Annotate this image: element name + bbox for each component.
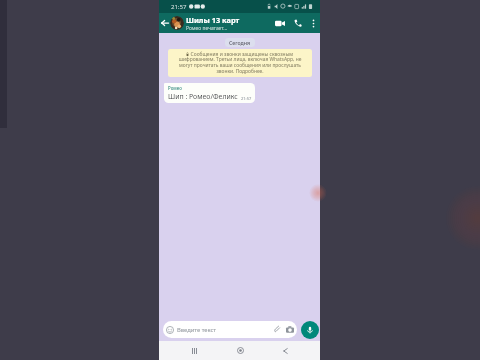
staticText: 21:57 (171, 3, 187, 11)
staticText: Ромео (168, 85, 182, 91)
button[interactable]: More options (307, 13, 319, 33)
button[interactable]: Back (159, 13, 170, 33)
staticText: Введите текст (177, 326, 216, 334)
button[interactable]: Ромео (164, 83, 255, 103)
button[interactable]: Camera (285, 325, 294, 334)
button[interactable]: Сегодня (225, 38, 255, 47)
button[interactable]: Home (229, 341, 251, 360)
staticText: Сегодня (229, 39, 251, 46)
button[interactable]: Record voice message (301, 321, 319, 339)
button[interactable]: Video call (270, 13, 289, 33)
button[interactable]: Attach file (273, 325, 282, 334)
button[interactable]: Recent apps (183, 341, 205, 360)
button[interactable]: Сообщения и звонки защищены сквозным шиф… (168, 49, 312, 77)
staticText: 21:57 (241, 96, 252, 101)
staticText: Шилы 13 карт (186, 15, 240, 25)
staticText: Ромео печатает... (186, 25, 228, 32)
staticText: Шип : Ромео/Феликс (168, 92, 238, 101)
button[interactable]: Back (274, 341, 296, 360)
button[interactable]: Voice call (289, 13, 307, 33)
button[interactable]: Profile photo (170, 16, 184, 30)
staticText: Сообщения и звонки защищены сквозным шиф… (175, 51, 305, 75)
button[interactable]: Введите текст (163, 321, 297, 338)
button[interactable]: Шилы 13 карт (186, 13, 270, 33)
